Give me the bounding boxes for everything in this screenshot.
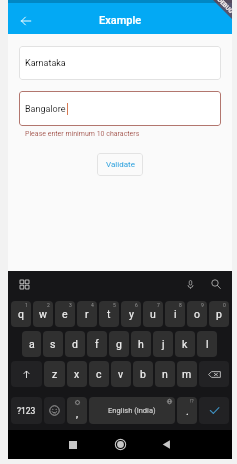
- button[interactable]: e: [55, 301, 75, 327]
- staticText: Karnataka: [25, 58, 66, 69]
- staticText: 6: [135, 302, 138, 308]
- staticText: k: [182, 338, 188, 350]
- staticText: s: [50, 338, 56, 350]
- button[interactable]: h: [131, 331, 151, 357]
- staticText: Example: [99, 14, 142, 27]
- staticText: m: [182, 368, 192, 380]
- button[interactable]: r: [77, 301, 97, 327]
- button[interactable]: p: [209, 301, 229, 327]
- staticText: ,: [76, 407, 79, 419]
- button[interactable]: Shift: [11, 361, 42, 387]
- staticText: u: [150, 308, 156, 320]
- button[interactable]: .: [177, 397, 197, 424]
- button[interactable]: l: [197, 331, 217, 357]
- staticText: v: [118, 368, 124, 380]
- button[interactable]: u: [143, 301, 163, 327]
- staticText: 8: [179, 302, 182, 308]
- button[interactable]: Back: [17, 12, 34, 29]
- staticText: y: [129, 308, 134, 320]
- staticText: 0: [223, 302, 226, 308]
- staticText: English (India): [108, 406, 156, 415]
- button[interactable]: Voice input: [181, 275, 199, 293]
- button[interactable]: v: [111, 361, 131, 387]
- staticText: z: [52, 368, 58, 380]
- button[interactable]: z: [44, 361, 65, 387]
- button[interactable]: d: [65, 331, 85, 357]
- button[interactable]: Bangalore: [19, 91, 221, 126]
- staticText: r: [85, 308, 89, 320]
- button[interactable]: Validate: [97, 153, 143, 176]
- button[interactable]: k: [175, 331, 195, 357]
- button[interactable]: Enter: [199, 397, 229, 424]
- button[interactable]: English (India): [89, 397, 175, 424]
- staticText: 7: [157, 302, 160, 308]
- button[interactable]: b: [133, 361, 153, 387]
- button[interactable]: Backspace: [199, 361, 229, 387]
- staticText: l: [206, 338, 209, 350]
- staticText: 3: [69, 302, 72, 308]
- staticText: Bangalore: [25, 104, 66, 115]
- button[interactable]: Keyboard layouts: [15, 275, 33, 293]
- button[interactable]: Karnataka: [19, 46, 221, 80]
- button[interactable]: o: [187, 301, 207, 327]
- staticText: h: [138, 338, 144, 350]
- button[interactable]: Emoji: [44, 397, 65, 424]
- button[interactable]: x: [67, 361, 87, 387]
- staticText: c: [96, 368, 102, 380]
- button[interactable]: f: [87, 331, 107, 357]
- button[interactable]: i: [165, 301, 185, 327]
- button[interactable]: m: [177, 361, 197, 387]
- button[interactable]: y: [121, 301, 141, 327]
- staticText: o: [194, 308, 200, 320]
- button[interactable]: g: [109, 331, 129, 357]
- button[interactable]: Search: [207, 275, 225, 293]
- staticText: 1: [25, 302, 28, 308]
- staticText: 5: [113, 302, 116, 308]
- staticText: q: [18, 308, 24, 320]
- staticText: ?123: [17, 406, 36, 416]
- button[interactable]: w: [33, 301, 53, 327]
- button[interactable]: c: [89, 361, 109, 387]
- staticText: g: [116, 338, 122, 350]
- staticText: 4: [91, 302, 94, 308]
- staticText: a: [29, 338, 35, 350]
- staticText: i: [174, 308, 177, 320]
- staticText: Validate: [106, 160, 135, 169]
- staticText: !?: [190, 398, 194, 404]
- staticText: n: [162, 368, 168, 380]
- staticText: w: [39, 308, 47, 320]
- button[interactable]: s: [43, 331, 63, 357]
- button[interactable]: ?123: [11, 397, 42, 424]
- staticText: d: [72, 338, 78, 350]
- staticText: t: [107, 308, 111, 320]
- button[interactable]: n: [155, 361, 175, 387]
- button[interactable]: a: [22, 331, 41, 357]
- staticText: 9: [201, 302, 204, 308]
- button[interactable]: Recents: [58, 430, 88, 459]
- button[interactable]: q: [11, 301, 31, 327]
- staticText: e: [62, 308, 68, 320]
- staticText: .: [186, 405, 189, 417]
- staticText: f: [95, 338, 99, 350]
- staticText: 2: [47, 302, 50, 308]
- staticText: j: [162, 338, 165, 350]
- button[interactable]: Back: [151, 430, 181, 459]
- button[interactable]: ,: [67, 397, 87, 424]
- button[interactable]: Home: [105, 430, 135, 459]
- staticText: DEBUG: [216, 0, 236, 15]
- button[interactable]: j: [153, 331, 173, 357]
- staticText: b: [140, 368, 146, 380]
- staticText: Please enter minimum 10 characters: [25, 130, 140, 138]
- staticText: x: [74, 368, 80, 380]
- staticText: p: [216, 308, 222, 320]
- button[interactable]: t: [99, 301, 119, 327]
